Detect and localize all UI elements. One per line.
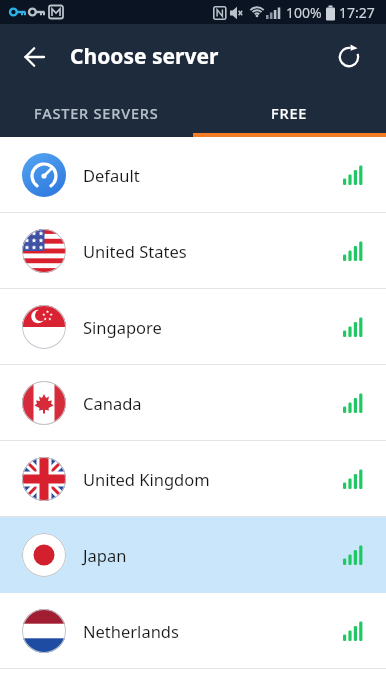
staticText: 100%: [286, 3, 322, 22]
button[interactable]: Canada: [0, 365, 386, 440]
staticText: FASTER SERVERS: [34, 103, 159, 123]
button[interactable]: Netherlands: [0, 593, 386, 668]
button[interactable]: Singapore: [0, 289, 386, 364]
button[interactable]: Japan: [0, 517, 386, 592]
button[interactable]: United States: [0, 213, 386, 288]
staticText: United States: [83, 240, 187, 262]
staticText: Singapore: [83, 316, 162, 338]
button[interactable]: [328, 36, 370, 78]
staticText: 17:27: [339, 3, 375, 22]
button[interactable]: United Kingdom: [0, 441, 386, 516]
staticText: United Kingdom: [83, 468, 210, 490]
button[interactable]: [16, 37, 56, 77]
staticText: Japan: [83, 544, 127, 566]
staticText: Choose server: [70, 42, 219, 71]
button[interactable]: Default: [0, 137, 386, 212]
staticText: FREE: [271, 103, 308, 123]
button[interactable]: FASTER SERVERS: [0, 89, 193, 137]
staticText: Canada: [83, 392, 142, 414]
staticText: Netherlands: [83, 620, 179, 642]
staticText: Default: [83, 164, 140, 186]
button[interactable]: FREE: [193, 89, 386, 137]
